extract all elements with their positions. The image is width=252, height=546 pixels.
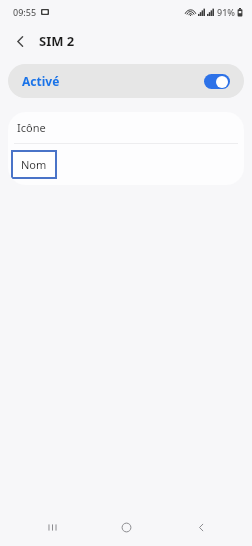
staticText: Nom (21, 157, 47, 172)
button[interactable]: Activé (8, 64, 244, 98)
staticText: Icône (17, 120, 46, 135)
button[interactable]: Nom (11, 150, 57, 179)
staticText: SIM 2 (39, 32, 75, 50)
button[interactable]: Recent apps (29, 510, 75, 544)
staticText: 91% (217, 6, 235, 18)
staticText: 09:55 (13, 6, 37, 18)
staticText: Activé (22, 73, 60, 89)
button[interactable]: Back (7, 28, 33, 54)
button[interactable]: Icône (8, 112, 244, 143)
button[interactable]: Home (103, 510, 149, 544)
button[interactable]: Back (178, 510, 224, 544)
